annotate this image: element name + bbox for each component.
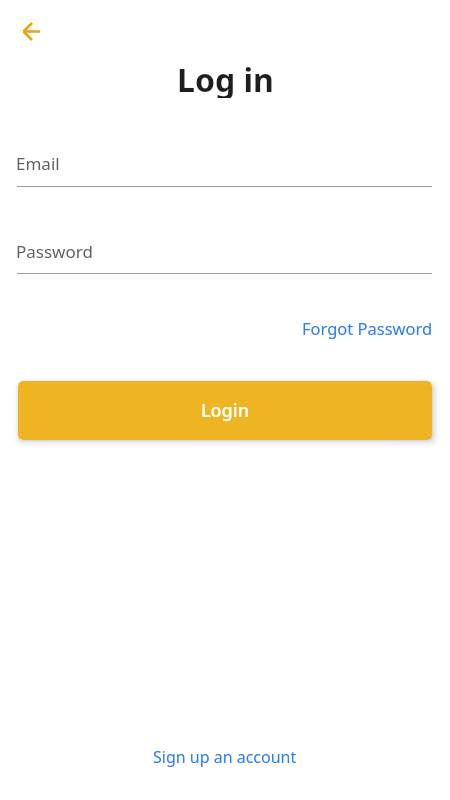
staticText: Login xyxy=(201,398,249,423)
staticText: Log in xyxy=(177,58,274,98)
button[interactable]: Login xyxy=(18,381,432,440)
button[interactable]: Email xyxy=(16,150,432,176)
button[interactable]: Forgot Password xyxy=(319,317,450,339)
staticText: Sign up an account xyxy=(153,746,297,768)
staticText: Forgot Password xyxy=(302,317,433,339)
button[interactable]: Sign up an account xyxy=(153,746,297,768)
button[interactable]: Password xyxy=(16,238,432,264)
staticText: Email xyxy=(16,152,60,175)
staticText: Password xyxy=(16,240,93,263)
button[interactable] xyxy=(12,12,50,50)
